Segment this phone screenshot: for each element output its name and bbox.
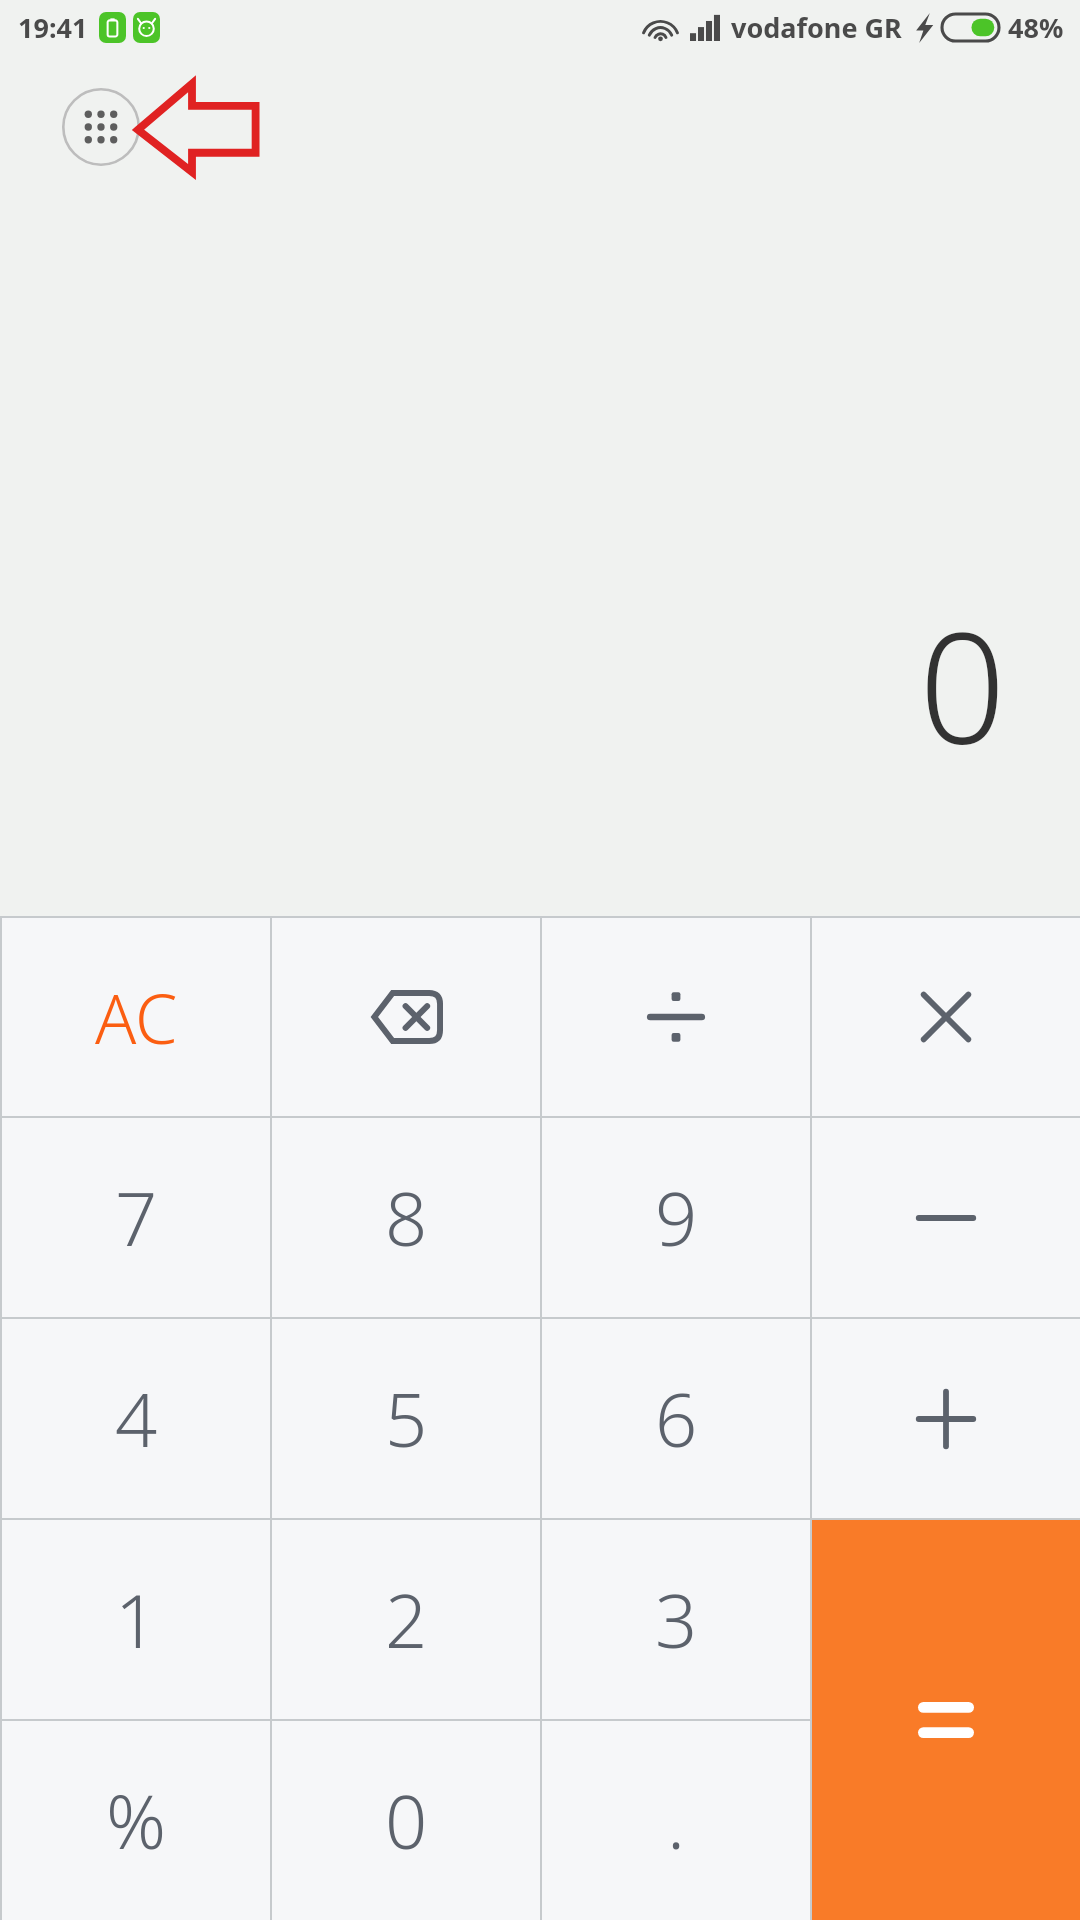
button[interactable]: 1: [2, 1520, 270, 1719]
other: Minus: [917, 1189, 975, 1247]
button[interactable]: 7: [2, 1118, 270, 1317]
button[interactable]: 6: [542, 1319, 810, 1518]
other: Divide: [648, 988, 704, 1046]
staticText: 19:41: [18, 9, 88, 46]
button[interactable]: AC: [2, 918, 270, 1116]
staticText: 0: [919, 581, 1006, 788]
button[interactable]: 9: [542, 1118, 810, 1317]
staticText: 2: [385, 1569, 428, 1670]
staticText: 3: [655, 1569, 698, 1670]
button[interactable]: Multiply: [812, 918, 1080, 1116]
staticText: 5: [385, 1368, 428, 1469]
staticText: 7: [115, 1167, 158, 1268]
button[interactable]: 0: [272, 1721, 540, 1920]
button[interactable]: Equals: [812, 1520, 1080, 1920]
button[interactable]: Plus: [812, 1319, 1080, 1518]
button[interactable]: Minus: [812, 1118, 1080, 1317]
button[interactable]: .: [542, 1721, 810, 1920]
other: Plus: [917, 1390, 975, 1448]
staticText: 0: [385, 1770, 428, 1871]
other: Backspace: [369, 990, 443, 1044]
button[interactable]: Divide: [542, 918, 810, 1116]
button[interactable]: Backspace: [272, 918, 540, 1116]
other: Multiply: [920, 991, 972, 1043]
button[interactable]: 8: [272, 1118, 540, 1317]
button[interactable]: 2: [272, 1520, 540, 1719]
button[interactable]: 5: [272, 1319, 540, 1518]
staticText: 6: [655, 1368, 698, 1469]
button[interactable]: 4: [2, 1319, 270, 1518]
staticText: vodafone GR: [731, 9, 902, 46]
staticText: AC: [95, 971, 178, 1064]
staticText: .: [667, 1770, 686, 1871]
button[interactable]: 3: [542, 1520, 810, 1719]
staticText: 4: [115, 1368, 158, 1469]
staticText: 48%: [1008, 9, 1064, 46]
button[interactable]: %: [2, 1721, 270, 1920]
staticText: %: [106, 1770, 167, 1871]
button[interactable]: App drawer: [62, 88, 140, 166]
staticText: 8: [385, 1167, 428, 1268]
staticText: 9: [655, 1167, 698, 1268]
staticText: 1: [115, 1569, 158, 1670]
